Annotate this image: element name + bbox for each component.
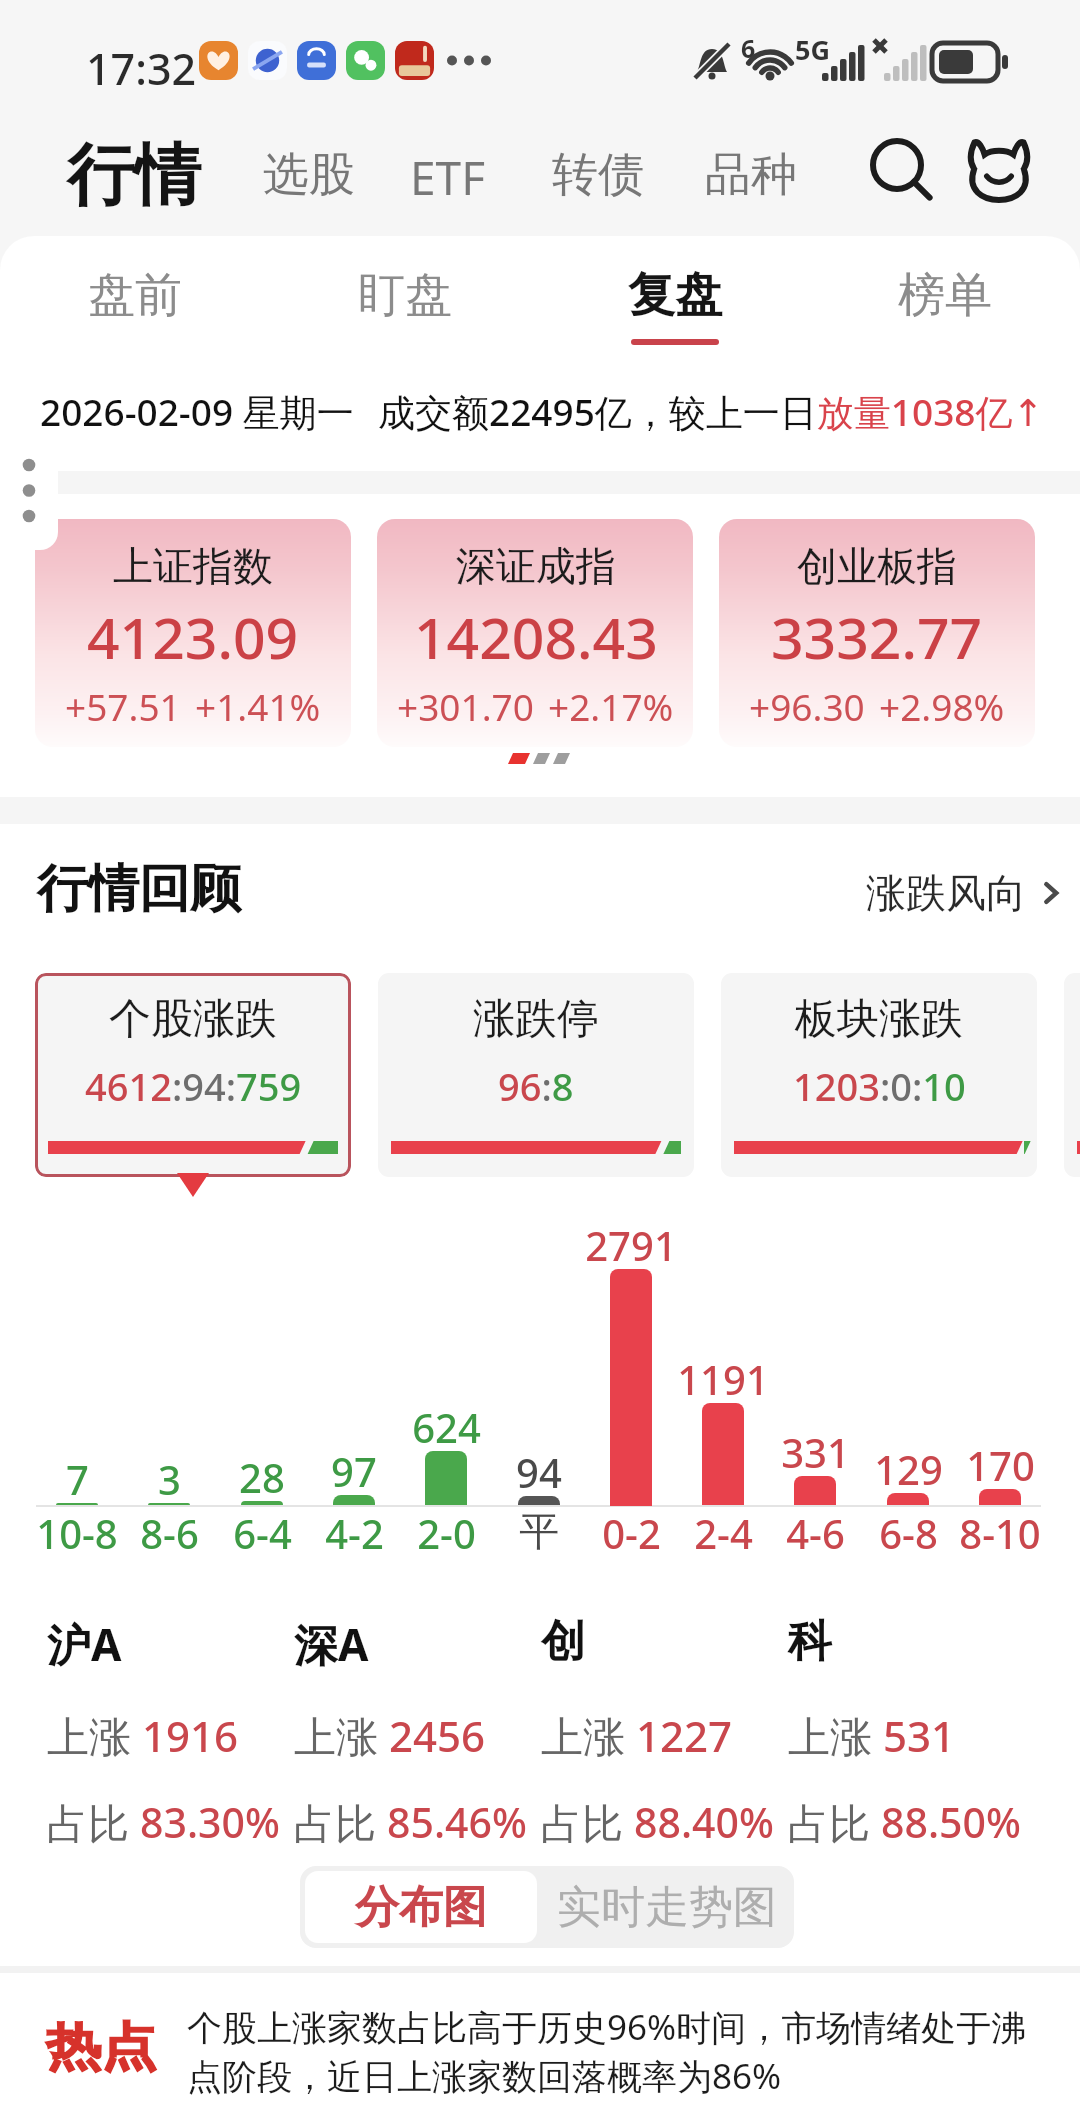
staticText: 170 [966, 1438, 1035, 1492]
button[interactable]: 换手率 [1064, 973, 1080, 1177]
button[interactable]: 上证指数 [35, 519, 351, 747]
staticText: 深证成指 [456, 541, 616, 591]
staticText: 4123.09 [87, 598, 299, 676]
staticText: 83.30% [140, 1794, 280, 1850]
staticText: 复盘 [628, 266, 722, 325]
staticText: +2.98% [879, 681, 1005, 731]
staticText: 88.40% [634, 1794, 774, 1850]
staticText: 1916 [142, 1707, 239, 1764]
staticText: 创业板指 [797, 541, 957, 591]
staticText: 榜单 [898, 266, 992, 325]
staticText: 板块涨跌 [795, 993, 963, 1046]
button[interactable]: 涨跌停 [378, 973, 694, 1177]
button[interactable]: 品种 [705, 146, 797, 204]
staticText: 上证指数 [113, 541, 273, 591]
staticText: 盯盘 [358, 266, 452, 325]
staticText: 3332.77 [771, 598, 983, 676]
staticText: 分布图 [355, 1880, 487, 1935]
button[interactable]: More options [0, 428, 58, 550]
button[interactable]: 分布图 [305, 1871, 537, 1943]
staticText: 2456 [389, 1707, 486, 1764]
button[interactable]: 行情 [67, 133, 201, 217]
staticText: 平 [519, 1506, 559, 1556]
staticText: 品种 [705, 146, 797, 204]
button[interactable]: ETF [410, 146, 486, 209]
button[interactable]: 深证成指 [377, 519, 693, 747]
staticText: 0-2 [602, 1506, 661, 1560]
staticText: 2-0 [417, 1506, 476, 1560]
button[interactable]: 盘前 [0, 240, 270, 358]
staticText: 97 [331, 1444, 377, 1498]
staticText: 7 [66, 1452, 89, 1506]
staticText: 10-8 [36, 1506, 118, 1560]
staticText: 上涨 [294, 1707, 389, 1764]
staticText: 占比 [788, 1794, 881, 1850]
staticText: 转债 [552, 146, 644, 204]
staticText: 1203:0:10 [793, 1060, 966, 1112]
staticText: 占比 [541, 1794, 634, 1850]
staticText: 96:8 [498, 1060, 574, 1112]
staticText: +57.51 [65, 681, 181, 731]
button[interactable]: 实时走势图 [540, 1866, 794, 1948]
staticText: 6 [741, 31, 756, 65]
staticText: 上涨 [788, 1707, 883, 1764]
staticText: 涨跌风向 [866, 868, 1026, 918]
staticText: 占比 [47, 1794, 140, 1850]
button[interactable]: 创业板指 [719, 519, 1035, 747]
button[interactable]: 复盘 [540, 240, 810, 358]
staticText: 成交额22495亿，较上一日放量1038亿↑ [378, 386, 1044, 437]
staticText: 624 [412, 1400, 481, 1454]
staticText: 4-2 [325, 1506, 384, 1560]
staticText: 上涨 [47, 1707, 142, 1764]
staticText: 8-10 [959, 1506, 1041, 1560]
staticText: 8-6 [140, 1506, 199, 1560]
button[interactable]: 个股涨跌 [35, 973, 351, 1177]
staticText: 6-4 [233, 1506, 292, 1560]
staticText: 实时走势图 [557, 1880, 777, 1935]
staticText: 2-4 [694, 1506, 753, 1560]
staticText: 涨跌停 [473, 993, 599, 1046]
staticText: 科 [788, 1614, 832, 1669]
staticText: 个股涨跌 [109, 993, 277, 1046]
staticText: 28 [239, 1450, 285, 1504]
staticText: 3 [158, 1452, 181, 1506]
button[interactable]: 涨跌风向 [866, 868, 1064, 918]
button[interactable]: 榜单 [810, 240, 1080, 358]
button[interactable]: 选股 [263, 146, 355, 204]
button[interactable]: 行情回顾 [37, 857, 241, 921]
button[interactable]: 盯盘 [270, 240, 540, 358]
staticText: 沪A [47, 1614, 122, 1674]
staticText: 4612:94:759 [85, 1060, 302, 1112]
staticText: 个股上涨家数占比高于历史96%时间，市场情绪处于沸点阶段，近日上涨家数回落概率为… [187, 2003, 1037, 2099]
staticText: 盘前 [88, 266, 182, 325]
button[interactable]: 转债 [552, 146, 644, 204]
staticText: 4-6 [786, 1506, 845, 1560]
staticText: 94 [516, 1445, 562, 1499]
staticText: +96.30 [749, 681, 865, 731]
staticText: 129 [874, 1442, 943, 1496]
staticText: 深A [294, 1614, 369, 1674]
staticText: 531 [883, 1707, 956, 1764]
staticText: 2026-02-09 星期一 [40, 386, 354, 437]
staticText: 5G [795, 31, 830, 68]
staticText: 占比 [294, 1794, 387, 1850]
staticText: +1.41% [195, 681, 321, 731]
staticText: 行情 [67, 133, 201, 217]
staticText: 选股 [263, 146, 355, 204]
staticText: 2791 [585, 1218, 677, 1272]
staticText: 创 [541, 1614, 585, 1669]
staticText: 14208.43 [414, 598, 658, 676]
button[interactable]: 板块涨跌 [721, 973, 1037, 1177]
staticText: 上涨 [541, 1707, 636, 1764]
button[interactable]: Search [862, 130, 940, 208]
button[interactable]: Profile [960, 130, 1038, 208]
staticText: ETF [410, 146, 486, 209]
staticText: 1191 [677, 1352, 769, 1406]
staticText: 行情回顾 [37, 857, 241, 921]
staticText: +2.17% [548, 681, 674, 731]
staticText: 85.46% [387, 1794, 527, 1850]
staticText: 17:32 [86, 39, 197, 98]
staticText: 88.50% [881, 1794, 1021, 1850]
staticText: +301.70 [397, 681, 534, 731]
staticText: 1227 [636, 1707, 733, 1764]
